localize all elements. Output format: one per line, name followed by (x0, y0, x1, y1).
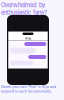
staticText: Overwhelmed by (1, 1, 45, 9)
staticText: respond to each fan personally. (1, 89, 52, 93)
staticText: Pink (24, 36, 31, 41)
staticText: enthusiastic fans? (1, 9, 47, 16)
staticText: Create your own "Pink" in Kiya and (1, 85, 56, 89)
